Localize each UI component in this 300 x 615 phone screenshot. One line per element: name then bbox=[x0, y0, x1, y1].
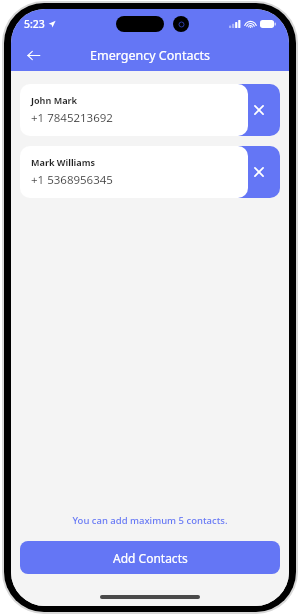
button[interactable]: Back bbox=[17, 39, 49, 71]
button[interactable]: Add Contacts bbox=[20, 541, 280, 574]
staticText: Add Contacts bbox=[113, 550, 188, 566]
button[interactable]: John Mark bbox=[20, 84, 248, 136]
staticText: 5:23 bbox=[24, 17, 45, 31]
staticText: Mark Williams bbox=[31, 156, 95, 168]
staticText: +1 5368956345 bbox=[31, 172, 113, 188]
button[interactable]: Delete contact bbox=[238, 146, 280, 198]
staticText: Emergency Contacts bbox=[90, 47, 211, 64]
button[interactable]: Delete contact bbox=[238, 84, 280, 136]
staticText: John Mark bbox=[31, 94, 78, 106]
staticText: You can add maximum 5 contacts. bbox=[11, 514, 289, 527]
staticText: +1 7845213692 bbox=[31, 110, 113, 126]
button[interactable]: Mark Williams bbox=[20, 146, 248, 198]
